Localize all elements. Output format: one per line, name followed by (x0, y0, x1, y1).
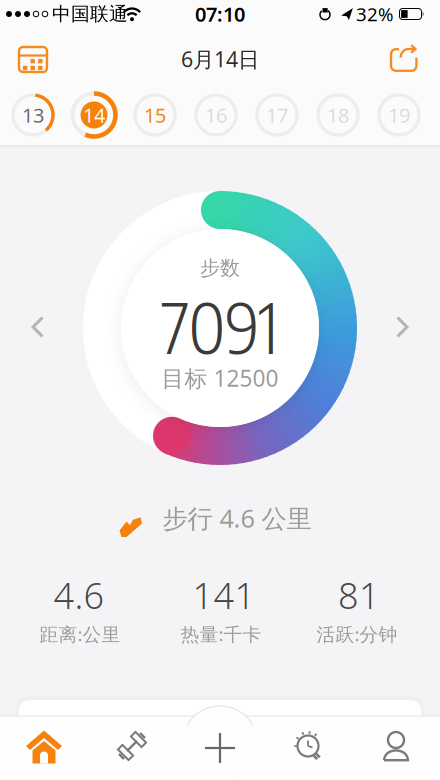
staticText: 07:10 (195, 1, 245, 27)
staticText: 距离:公里 (39, 622, 120, 646)
staticText: 步数 (200, 256, 240, 280)
staticText: 目标 12500 (161, 363, 278, 393)
staticText: 18 (327, 102, 349, 128)
button[interactable] (26, 730, 62, 763)
staticText: 32% (356, 2, 394, 26)
staticText: 步行 4.6 公里 (162, 501, 311, 535)
button[interactable] (382, 731, 410, 761)
staticText: 7091 (161, 283, 278, 369)
staticText: 热量:千卡 (180, 622, 261, 646)
staticText: 中国联通 (52, 2, 128, 25)
button[interactable] (31, 316, 45, 338)
button[interactable]: 19 (375, 91, 423, 139)
staticText: 16 (205, 102, 227, 128)
button[interactable]: 15 (131, 91, 179, 139)
button[interactable]: 13 (9, 91, 57, 139)
staticText: 6月14日 (181, 45, 259, 73)
staticText: 141 (192, 571, 255, 619)
button[interactable] (390, 44, 418, 72)
button[interactable] (17, 45, 48, 73)
button[interactable]: 17 (253, 91, 301, 139)
staticText: 15 (144, 102, 166, 128)
staticText: 19 (388, 102, 410, 128)
button[interactable] (294, 731, 324, 761)
staticText: 活跃:分钟 (316, 622, 397, 646)
staticText: 14 (83, 102, 105, 128)
button[interactable] (205, 733, 235, 763)
button[interactable]: 18 (314, 91, 362, 139)
button[interactable]: 14 (70, 91, 118, 139)
staticText: 13 (22, 102, 44, 128)
staticText: 4.6 (53, 571, 104, 619)
staticText: 81 (338, 571, 380, 619)
button[interactable] (395, 316, 409, 338)
button[interactable] (117, 731, 147, 761)
staticText: 17 (266, 102, 288, 128)
button[interactable]: 16 (192, 91, 240, 139)
